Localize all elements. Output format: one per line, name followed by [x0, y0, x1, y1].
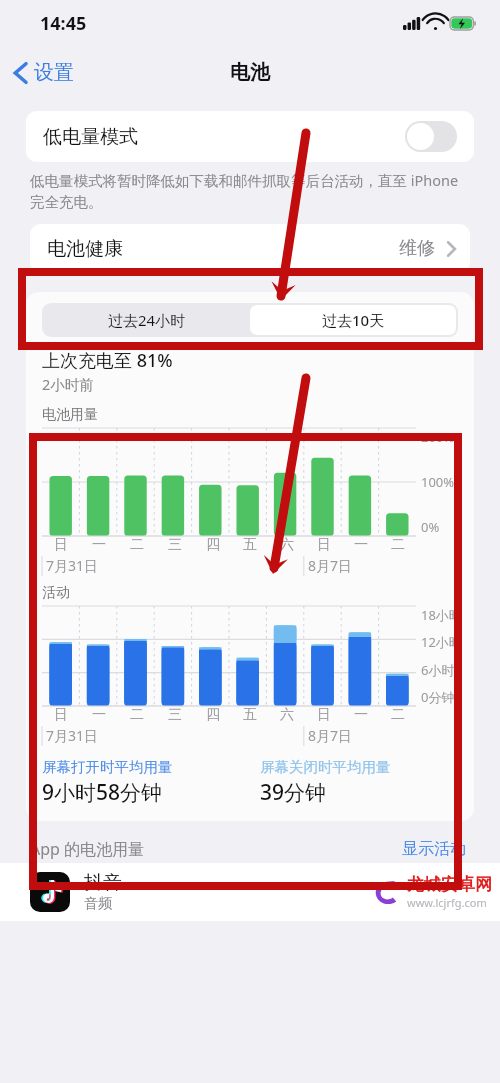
staticText: 14:45 — [40, 11, 87, 36]
staticText: 8月7日 — [308, 556, 353, 575]
staticText: 六 — [280, 536, 294, 554]
staticText: 上次充电至 81% — [42, 348, 173, 373]
staticText: 二 — [130, 706, 144, 724]
staticText: 一 — [92, 536, 106, 554]
staticText: 0% — [421, 518, 440, 536]
staticText: 五 — [243, 536, 257, 554]
staticText: www.lcjrfg.com — [407, 895, 487, 910]
staticText: 六 — [280, 706, 294, 724]
staticText: 屏幕打开时平均用量 — [42, 758, 173, 776]
staticText: 音频 — [84, 895, 112, 913]
staticText: 过去10天 — [322, 310, 385, 330]
staticText: 三 — [168, 706, 182, 724]
staticText: 一 — [354, 536, 368, 554]
staticText: 四 — [206, 536, 220, 554]
button[interactable]: 过去10天 — [250, 305, 456, 335]
staticText: 日 — [317, 536, 331, 554]
staticText: App 的电池用量 — [30, 838, 145, 860]
staticText: 日 — [54, 536, 68, 554]
staticText: 2小时前 — [42, 374, 94, 394]
staticText: 日 — [54, 706, 68, 724]
staticText: 维修 — [399, 237, 435, 260]
staticText: 6小时 — [421, 661, 455, 679]
staticText: 活动 — [42, 584, 70, 602]
staticText: 二 — [130, 536, 144, 554]
staticText: 低电量模式 — [43, 125, 138, 149]
staticText: 日 — [317, 706, 331, 724]
staticText: 电池用量 — [42, 406, 98, 424]
staticText: 显示活动 — [402, 839, 466, 859]
staticText: 0分钟 — [421, 688, 455, 706]
button[interactable]: 显示活动 — [398, 835, 470, 863]
button[interactable]: 设置 — [0, 54, 84, 91]
staticText: 三 — [168, 536, 182, 554]
staticText: 39分钟 — [260, 778, 327, 807]
staticText: 低电量模式将暂时降低如下载和邮件抓取等后台活动，直至 iPhone 完全充电。 — [30, 170, 470, 211]
staticText: 五 — [243, 706, 257, 724]
staticText: 一 — [354, 706, 368, 724]
button[interactable]: 抖音 — [0, 863, 500, 921]
staticText: 7月31日 — [46, 556, 99, 575]
button[interactable]: 低电量模式 — [26, 111, 474, 162]
staticText: 龙城安卓网 — [407, 874, 492, 895]
staticText: 抖音 — [84, 871, 122, 895]
staticText: 电池 — [230, 60, 270, 85]
button[interactable]: 过去24小时 — [44, 305, 250, 335]
staticText: 8月7日 — [308, 726, 353, 745]
staticText: 18小时 — [421, 606, 462, 624]
staticText: 200% — [421, 428, 455, 446]
staticText: 9小时58分钟 — [42, 778, 163, 807]
staticText: 100% — [421, 473, 455, 491]
staticText: 电池健康 — [47, 237, 123, 261]
staticText: 一 — [92, 706, 106, 724]
staticText: 屏幕关闭时平均用量 — [260, 758, 391, 776]
button[interactable]: 电池健康 — [30, 224, 470, 273]
staticText: 设置 — [34, 60, 74, 85]
staticText: 四 — [206, 706, 220, 724]
button[interactable]: Low Power Mode toggle — [405, 121, 457, 152]
staticText: 12小时 — [421, 633, 462, 651]
staticText: 过去24小时 — [108, 310, 186, 330]
staticText: 二 — [391, 536, 405, 554]
staticText: 7月31日 — [46, 726, 99, 745]
staticText: 二 — [391, 706, 405, 724]
